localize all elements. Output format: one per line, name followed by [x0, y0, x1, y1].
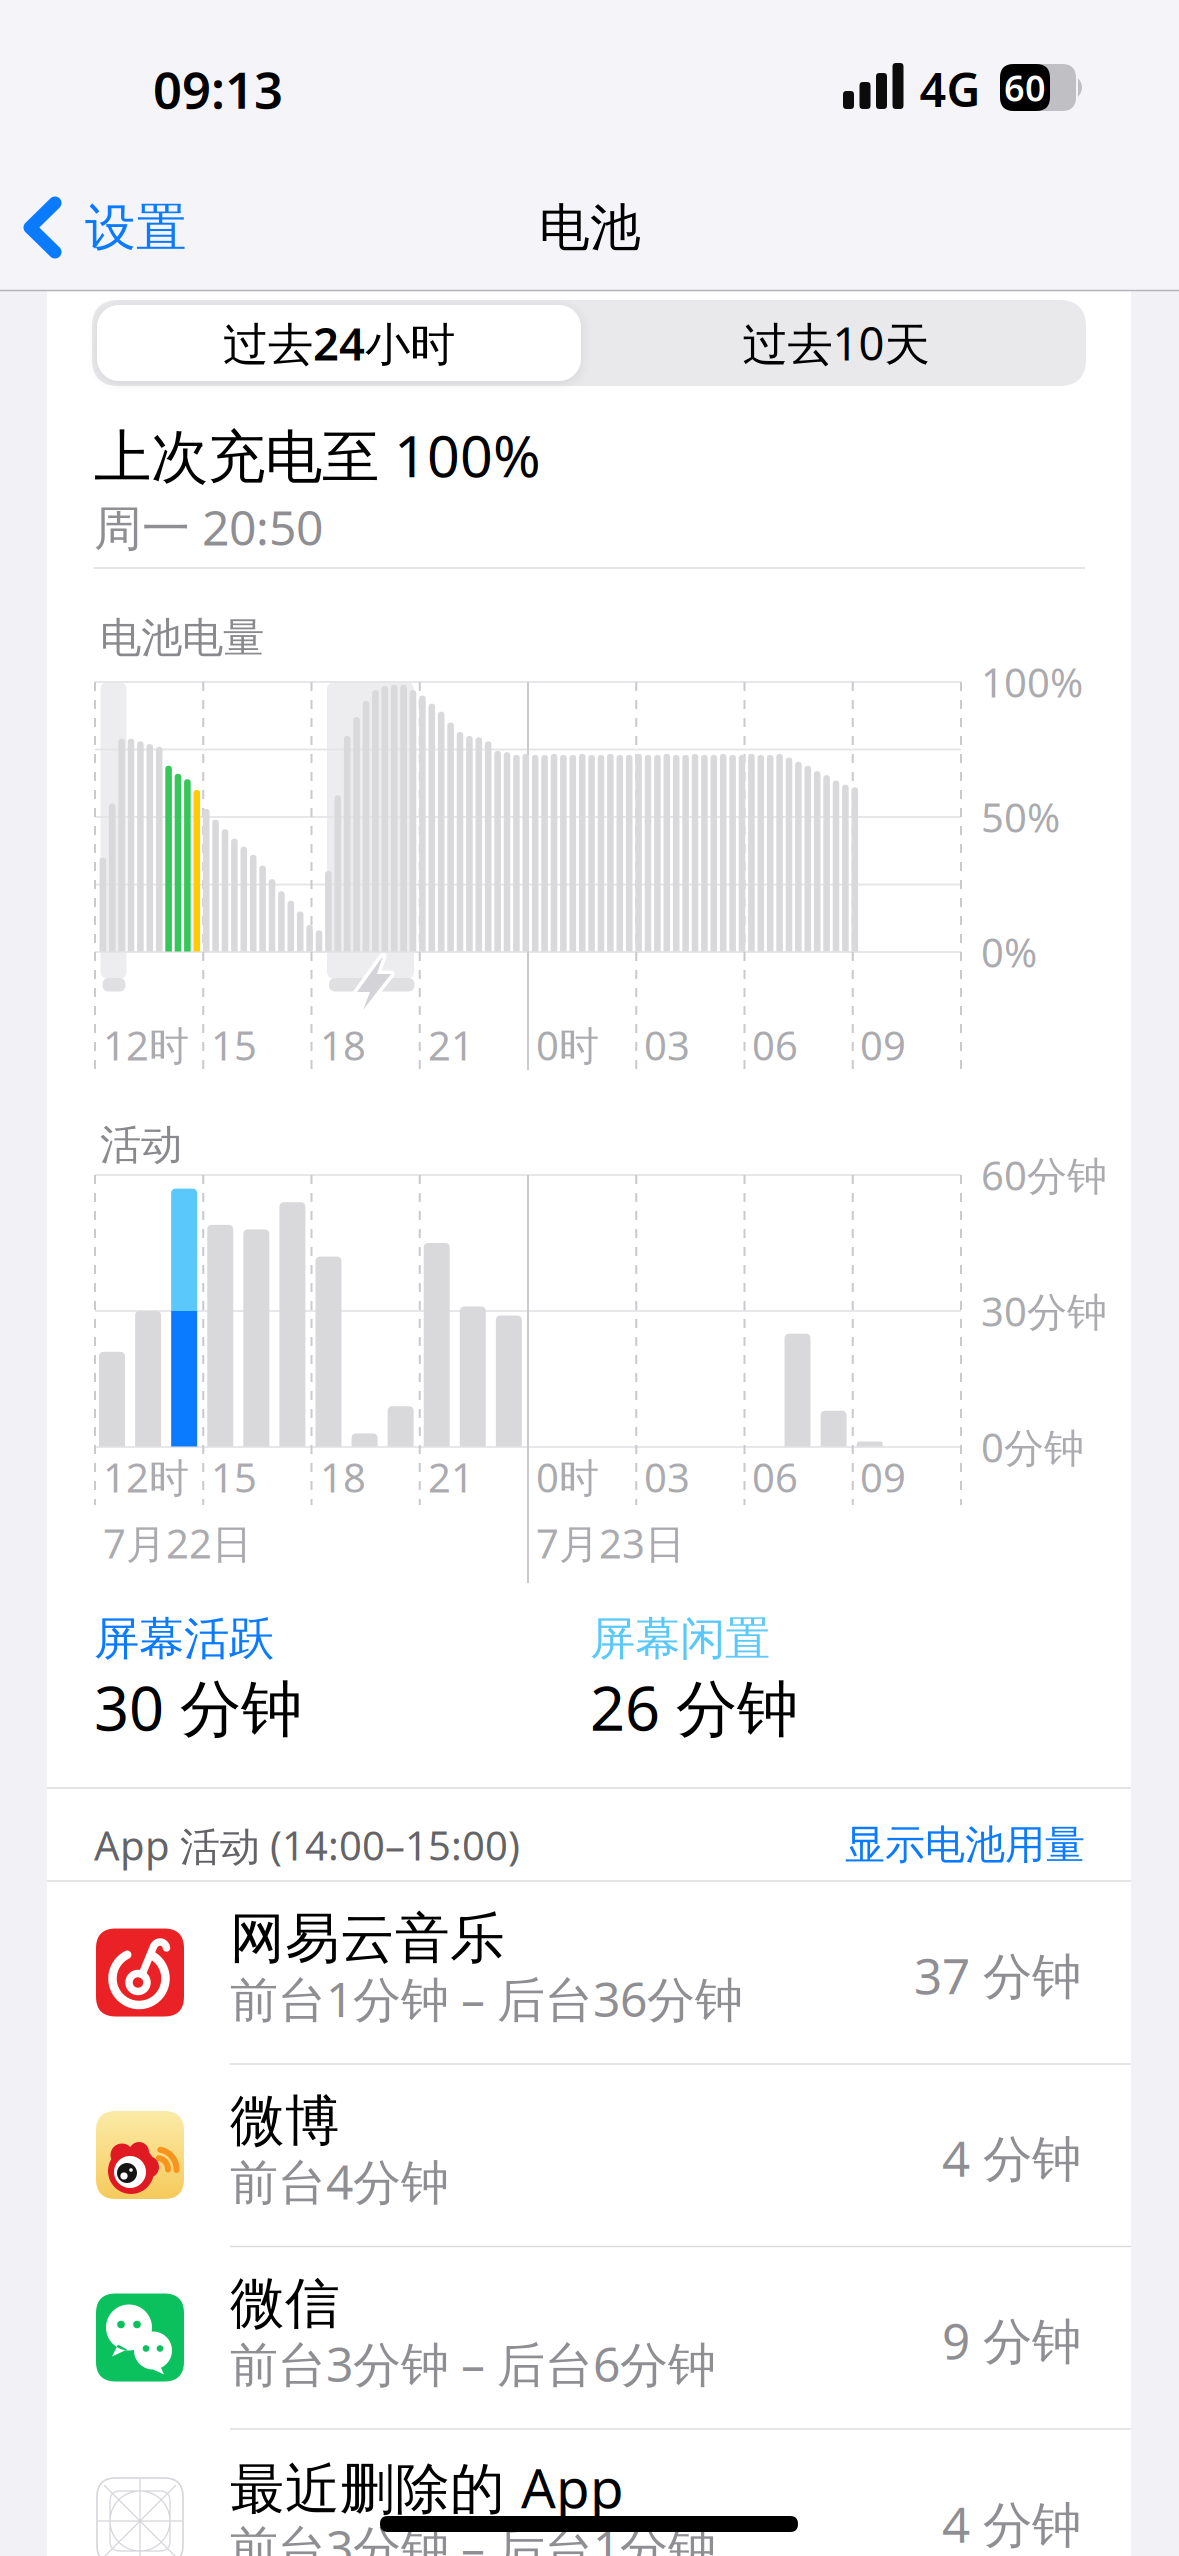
staticText: 电池: [539, 197, 641, 259]
staticText: 30 分钟: [94, 1666, 302, 1748]
staticText: 电池电量: [100, 613, 264, 663]
staticText: 前台3分钟 – 后台6分钟: [230, 2332, 716, 2395]
staticText: 周一 20:50: [94, 495, 323, 559]
staticText: 过去10天: [742, 313, 929, 373]
staticText: 100%: [981, 655, 1083, 708]
staticText: 9 分钟: [942, 2307, 1081, 2373]
staticText: 60: [1004, 64, 1046, 111]
staticText: 0时: [536, 1018, 599, 1071]
staticText: 12时: [103, 1018, 189, 1071]
staticText: 屏幕活跃: [94, 1611, 274, 1667]
button[interactable]: 最近删除的 App: [47, 2429, 1131, 2556]
staticText: 上次充电至 100%: [94, 417, 541, 493]
staticText: 4G: [919, 58, 980, 120]
staticText: 06: [752, 1018, 798, 1071]
staticText: 50%: [981, 790, 1060, 843]
staticText: 30分钟: [981, 1284, 1107, 1337]
staticText: 15: [211, 1450, 257, 1503]
staticText: 7月22日: [103, 1516, 252, 1569]
staticText: 0分钟: [981, 1420, 1084, 1473]
staticText: 21: [428, 1018, 474, 1071]
staticText: 26 分钟: [590, 1666, 798, 1748]
button[interactable]: 显示电池用量: [805, 1811, 1085, 1879]
staticText: 显示电池用量: [845, 1820, 1085, 1869]
staticText: 09: [860, 1450, 906, 1503]
staticText: 0%: [981, 925, 1037, 978]
staticText: 7月23日: [536, 1516, 685, 1569]
staticText: 最近删除的 App: [230, 2451, 624, 2523]
staticText: 09:13: [153, 55, 283, 123]
staticText: 4 分钟: [942, 2491, 1081, 2556]
staticText: 微信: [230, 2270, 340, 2337]
staticText: 03: [644, 1018, 690, 1071]
button[interactable]: 过去24小时: [92, 300, 586, 386]
button[interactable]: 网易云音乐: [47, 1881, 1131, 2064]
staticText: 60分钟: [981, 1148, 1107, 1201]
staticText: 设置: [85, 197, 187, 259]
staticText: 前台1分钟 – 后台36分钟: [230, 1967, 743, 2030]
staticText: 前台4分钟: [230, 2149, 449, 2213]
staticText: 18: [320, 1450, 366, 1503]
staticText: 18: [320, 1018, 366, 1071]
staticText: 09: [860, 1018, 906, 1071]
staticText: 15: [211, 1018, 257, 1071]
staticText: 过去24小时: [223, 313, 455, 373]
staticText: App 活动 (14:00–15:00): [94, 1818, 520, 1872]
staticText: 前台3分钟 – 后台1分钟: [230, 2515, 716, 2556]
staticText: 屏幕闲置: [590, 1611, 770, 1667]
staticText: 03: [644, 1450, 690, 1503]
staticText: 06: [752, 1450, 798, 1503]
staticText: 网易云音乐: [230, 1905, 505, 1972]
staticText: 12时: [103, 1450, 189, 1503]
staticText: 21: [428, 1450, 474, 1503]
button[interactable]: 过去10天: [586, 300, 1086, 386]
staticText: 4 分钟: [942, 2125, 1081, 2190]
button[interactable]: 微博: [47, 2063, 1131, 2246]
staticText: 0时: [536, 1450, 599, 1503]
button[interactable]: 返回设置: [14, 190, 264, 260]
staticText: 微博: [230, 2087, 340, 2154]
staticText: 活动: [100, 1120, 182, 1170]
button[interactable]: 微信: [47, 2246, 1131, 2429]
staticText: 37 分钟: [914, 1942, 1081, 2008]
